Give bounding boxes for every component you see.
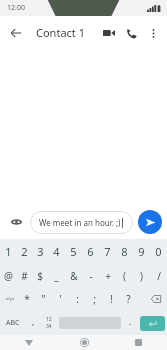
button[interactable]: 0 [150, 239, 167, 264]
staticText: ; [93, 292, 96, 306]
button[interactable]: Back [5, 22, 27, 44]
staticText: ! [110, 292, 113, 306]
staticText: ? [126, 292, 131, 306]
button[interactable]: . [123, 311, 138, 335]
button[interactable]: More options [142, 22, 164, 44]
button[interactable]: 5 [65, 239, 82, 264]
button[interactable]: 1 [0, 239, 16, 264]
staticText: 8 [121, 244, 128, 259]
button[interactable]: 4 [48, 239, 65, 264]
staticText: We meet in an hour. ;) [39, 217, 121, 228]
staticText: 12 [46, 316, 52, 323]
button[interactable]: Enter [140, 316, 165, 331]
button[interactable]: Stickers [5, 211, 27, 233]
button[interactable]: Send [138, 210, 162, 234]
button[interactable]: Back [20, 335, 38, 350]
button[interactable]: ) [133, 264, 150, 287]
staticText: + [105, 269, 111, 283]
staticText: , [32, 315, 35, 327]
button[interactable]: 6 [82, 239, 99, 264]
button[interactable]: Home [75, 335, 93, 350]
staticText: " [41, 292, 46, 306]
button[interactable]: =\< [0, 287, 19, 311]
button[interactable]: ABC [0, 311, 26, 335]
button[interactable]: # [16, 264, 32, 287]
button[interactable]: ! [103, 287, 120, 311]
staticText: Contact 1 [36, 25, 85, 40]
button[interactable]: 9 [133, 239, 150, 264]
button[interactable]: We meet in an hour. ;) [30, 211, 133, 234]
button[interactable]: ( [116, 264, 133, 287]
button[interactable]: Numbers [40, 311, 57, 335]
button[interactable]: 7 [99, 239, 116, 264]
button[interactable]: Recent apps [129, 335, 147, 350]
staticText: 3 [37, 244, 44, 259]
staticText: # [21, 269, 28, 283]
staticText: @ [4, 269, 13, 283]
button[interactable]: : [69, 287, 86, 311]
button[interactable]: 3 [32, 239, 48, 264]
staticText: 4 [53, 244, 60, 259]
button[interactable]: / [150, 264, 167, 287]
staticText: ABC [6, 318, 20, 328]
button[interactable]: + [99, 264, 116, 287]
button[interactable]: - [82, 264, 99, 287]
button[interactable]: Call [120, 22, 142, 44]
button[interactable]: " [35, 287, 52, 311]
staticText: $ [37, 269, 43, 283]
staticText: / [157, 269, 161, 283]
staticText: ( [123, 269, 126, 283]
button[interactable]: $ [32, 264, 48, 287]
staticText: 5 [70, 244, 77, 259]
staticText: _ [54, 269, 59, 283]
staticText: =\< [5, 295, 15, 303]
button[interactable]: _ [48, 264, 65, 287]
button[interactable]: ? [120, 287, 137, 311]
staticText: 12:00 [7, 3, 25, 13]
staticText: * [24, 292, 30, 306]
button[interactable]: 8 [116, 239, 133, 264]
button[interactable]: ; [86, 287, 103, 311]
button[interactable]: ' [52, 287, 69, 311]
staticText: 6 [87, 244, 94, 259]
staticText: . [129, 315, 132, 327]
staticText: 34 [46, 323, 52, 330]
staticText: 1 [5, 244, 12, 259]
button[interactable]: * [19, 287, 35, 311]
staticText: & [70, 269, 78, 283]
button[interactable]: Video call [98, 22, 120, 44]
button[interactable]: , [26, 311, 40, 335]
button[interactable]: 2 [16, 239, 32, 264]
button[interactable]: & [65, 264, 82, 287]
staticText: ' [59, 292, 62, 306]
staticText: : [76, 292, 79, 306]
staticText: - [89, 269, 93, 283]
staticText: 7 [104, 244, 111, 259]
staticText: 0 [155, 244, 162, 259]
button[interactable]: Backspace [145, 287, 167, 311]
staticText: 2 [21, 244, 28, 259]
staticText: ) [140, 269, 143, 283]
staticText: 9 [138, 244, 145, 259]
button[interactable]: @ [0, 264, 16, 287]
